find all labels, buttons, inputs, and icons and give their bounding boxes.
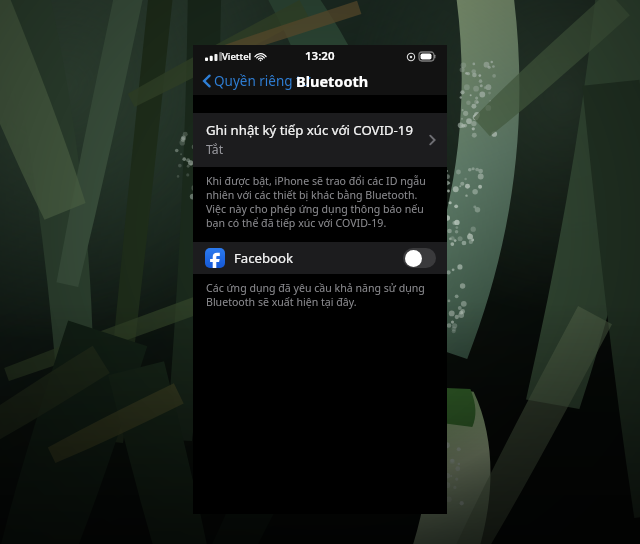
staticText: Quyền riêng tư	[214, 72, 311, 90]
staticText: Các ứng dụng đã yêu cầu khả năng sử dụng…	[206, 281, 433, 309]
staticText: Tắt	[206, 141, 224, 158]
staticText: Facebook	[234, 249, 403, 267]
staticText: 13:20	[305, 48, 335, 64]
button[interactable]: Ghi nhật ký tiếp xúc với COVID-19	[193, 113, 447, 167]
staticText: Bluetooth	[296, 71, 369, 91]
button[interactable]: Facebook	[193, 242, 447, 274]
button[interactable]: Bluetooth access for Facebook, off	[403, 248, 436, 268]
staticText: Viettel	[222, 50, 252, 63]
button[interactable]: Quyền riêng tư	[200, 69, 314, 93]
staticText: Ghi nhật ký tiếp xúc với COVID-19	[206, 121, 413, 139]
staticText: Khi được bật, iPhone sẽ trao đổi các ID …	[206, 174, 433, 230]
